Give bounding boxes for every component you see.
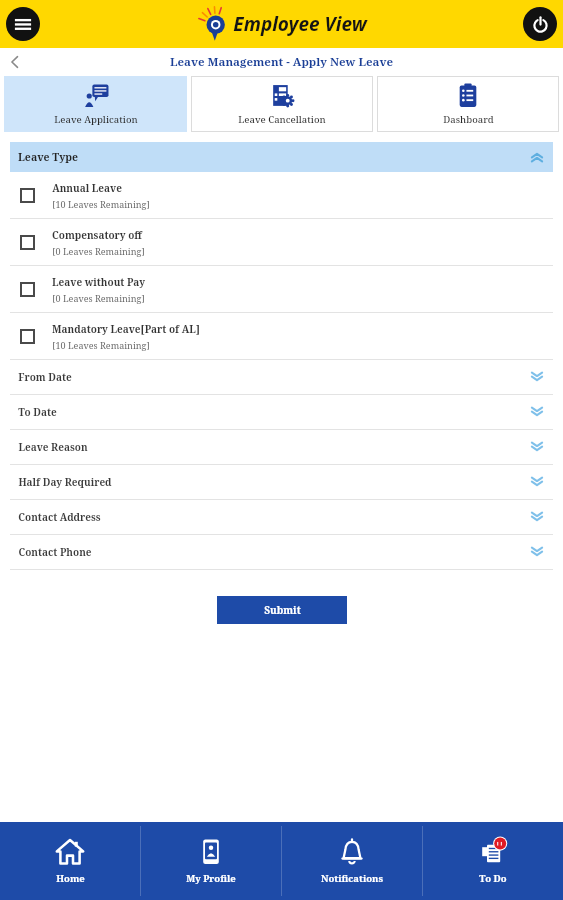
staticText: Employee View <box>233 11 367 37</box>
button[interactable]: Mandatory Leave[Part of AL] <box>10 313 553 359</box>
button[interactable]: Leave Reason <box>10 430 553 464</box>
button[interactable]: Annual Leave <box>10 172 553 218</box>
staticText: [10 Leaves Remaining] <box>52 339 150 351</box>
button[interactable]: To Date <box>10 395 553 429</box>
staticText: To Date <box>18 405 57 419</box>
button[interactable]: Leave Application <box>4 76 187 132</box>
button[interactable]: Half Day Required <box>10 465 553 499</box>
button[interactable]: Home <box>0 822 140 900</box>
button[interactable]: Power / Logout <box>523 7 557 41</box>
staticText: Leave Type <box>18 150 78 164</box>
button[interactable]: To Do <box>423 822 563 900</box>
staticText: Leave without Pay <box>52 275 145 289</box>
button[interactable]: Leave without Pay <box>10 266 553 312</box>
staticText: Compensatory off <box>52 228 142 242</box>
button[interactable]: Compensatory off <box>10 219 553 265</box>
staticText: Half Day Required <box>18 475 112 489</box>
button[interactable]: From Date <box>10 360 553 394</box>
staticText: Dashboard <box>443 113 494 126</box>
staticText: Mandatory Leave[Part of AL] <box>52 322 200 336</box>
staticText: Leave Cancellation <box>238 113 326 126</box>
button[interactable]: Leave Cancellation <box>191 76 373 132</box>
staticText: [0 Leaves Remaining] <box>52 245 145 257</box>
button[interactable]: Menu <box>6 7 40 41</box>
staticText: Leave Management - Apply New Leave <box>170 54 393 70</box>
staticText: Contact Address <box>18 510 101 524</box>
button[interactable]: My Profile <box>141 822 281 900</box>
staticText: Leave Application <box>54 113 138 126</box>
button[interactable]: Contact Phone <box>10 535 553 569</box>
staticText: To Do <box>479 872 507 885</box>
staticText: Leave Reason <box>18 440 88 454</box>
staticText: From Date <box>18 370 72 384</box>
staticText: My Profile <box>186 872 236 885</box>
staticText: Submit <box>264 603 301 617</box>
button[interactable]: Dashboard <box>377 76 559 132</box>
button[interactable]: Back <box>0 48 30 76</box>
button[interactable]: Leave Type <box>10 142 553 172</box>
staticText: [0 Leaves Remaining] <box>52 292 145 304</box>
staticText: Annual Leave <box>52 181 122 195</box>
staticText: [10 Leaves Remaining] <box>52 198 150 210</box>
button[interactable]: Notifications <box>282 822 422 900</box>
staticText: Notifications <box>321 872 383 885</box>
staticText: Home <box>56 872 85 885</box>
staticText: Contact Phone <box>18 545 92 559</box>
button[interactable]: Contact Address <box>10 500 553 534</box>
button[interactable]: Submit <box>217 596 347 624</box>
